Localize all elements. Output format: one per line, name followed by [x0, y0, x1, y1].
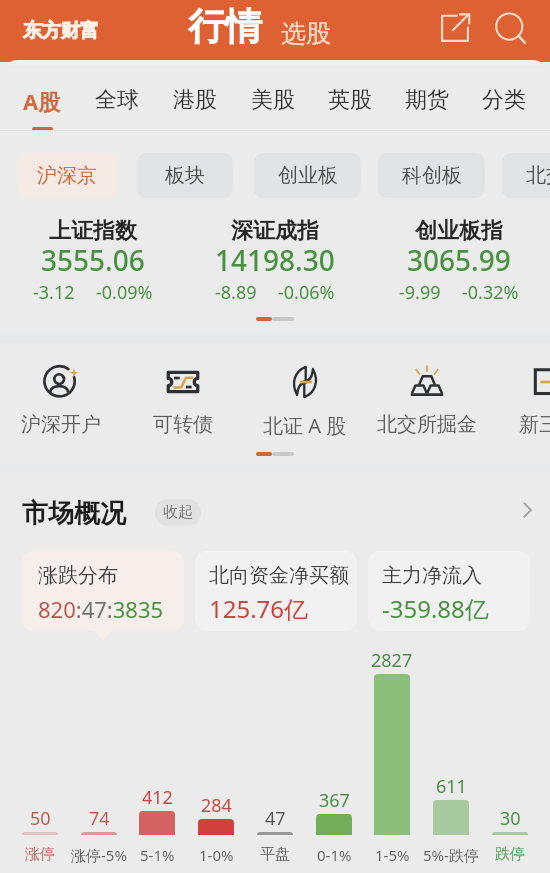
button[interactable]: 跌停	[476, 845, 544, 871]
button[interactable]: 1-5%	[358, 845, 426, 871]
staticText: 5%-跌停	[423, 845, 479, 865]
button[interactable]	[180, 210, 370, 305]
staticText: 367	[319, 788, 350, 813]
button[interactable]: 美股	[245, 86, 301, 131]
staticText: 5-1%	[140, 845, 175, 865]
staticText: 14198.30	[215, 241, 335, 279]
staticText: -0.32%	[462, 280, 519, 305]
staticText: 平盘	[260, 845, 290, 864]
button[interactable]: 北交所	[502, 153, 550, 198]
staticText: 412	[142, 785, 173, 810]
button[interactable]: 5-1%	[123, 845, 191, 871]
staticText: 创业板指	[415, 217, 503, 245]
button[interactable]: 港股	[167, 86, 223, 131]
button[interactable]	[1, 358, 121, 438]
button[interactable]: 沪深京	[17, 153, 117, 198]
button[interactable]: 分类	[476, 86, 532, 131]
staticText: 收起	[163, 503, 193, 522]
staticText: 全球	[95, 86, 139, 114]
button[interactable]: A股	[14, 86, 70, 131]
button[interactable]: 创业板	[254, 153, 361, 198]
button[interactable]: 全球	[89, 86, 145, 131]
staticText: 主力净流入	[382, 563, 482, 588]
staticText: 创业板	[278, 163, 338, 188]
staticText: 涨停-5%	[71, 845, 127, 865]
button[interactable]	[364, 210, 550, 305]
button[interactable]: 涨停-5%	[65, 845, 133, 871]
staticText: 选股	[281, 18, 331, 49]
button[interactable]: 平盘	[241, 845, 309, 871]
button[interactable]: 1-0%	[182, 845, 250, 871]
staticText: 科创板	[402, 163, 462, 188]
button[interactable]: 主力净流入	[368, 551, 530, 631]
staticText: 市场概况	[22, 497, 126, 530]
button[interactable]: 板块	[137, 153, 233, 198]
button[interactable]	[367, 358, 487, 438]
staticText: 3555.06	[41, 241, 145, 279]
staticText: -9.99	[399, 280, 441, 305]
staticText: 611	[436, 774, 467, 799]
staticText: 47	[265, 806, 286, 831]
button[interactable]: 涨跌分布	[22, 551, 184, 631]
staticText: 北证 A 股	[263, 412, 347, 439]
staticText: 英股	[328, 86, 372, 114]
button[interactable]	[0, 210, 188, 305]
staticText: 0-1%	[317, 845, 352, 865]
staticText: 期货	[405, 86, 449, 114]
staticText: A股	[23, 86, 61, 116]
staticText: 74	[89, 806, 110, 831]
button[interactable]	[123, 358, 243, 438]
staticText: 港股	[173, 86, 217, 114]
staticText: 820:47:3835	[38, 594, 164, 624]
button[interactable]	[245, 358, 365, 438]
staticText: 1-0%	[199, 845, 234, 865]
staticText: 125.76亿	[209, 592, 309, 625]
staticText: 30	[500, 806, 521, 831]
staticText: 沪深京	[37, 163, 97, 188]
staticText: 50	[30, 806, 51, 831]
staticText: 北交所掘金	[377, 412, 477, 437]
staticText: 北交所	[526, 163, 550, 188]
staticText: 板块	[165, 163, 205, 188]
staticText: 284	[201, 793, 232, 818]
staticText: -3.12	[33, 280, 75, 305]
button[interactable]: 涨停	[6, 845, 74, 871]
staticText: 2827	[371, 648, 413, 673]
staticText: 北向资金净买额	[209, 563, 349, 588]
staticText: 上证指数	[49, 217, 137, 245]
staticText: 新三板	[519, 412, 550, 437]
staticText: 3065.99	[407, 241, 511, 279]
staticText: -0.06%	[278, 280, 335, 305]
staticText: 1-5%	[375, 845, 410, 865]
button[interactable]: 0-1%	[300, 845, 368, 871]
staticText: 分类	[482, 86, 526, 114]
staticText: 深证成指	[231, 217, 319, 245]
button[interactable]	[489, 358, 550, 438]
staticText: 美股	[251, 86, 295, 114]
staticText: 行情	[188, 3, 262, 50]
button[interactable]: 期货	[399, 86, 455, 131]
button[interactable]: 科创板	[378, 153, 485, 198]
button[interactable]: 选股	[281, 18, 331, 49]
button[interactable]: 收起	[155, 499, 201, 526]
staticText: 可转债	[153, 412, 213, 437]
staticText: -8.89	[215, 280, 257, 305]
button[interactable]: 北向资金净买额	[195, 551, 357, 631]
button[interactable]: Search	[493, 11, 531, 49]
staticText: 东方财富	[23, 19, 99, 43]
staticText: -0.09%	[96, 280, 153, 305]
staticText: 涨跌分布	[38, 563, 118, 588]
button[interactable]: Share	[436, 9, 474, 47]
button[interactable]: 英股	[322, 86, 378, 131]
staticText: 跌停	[495, 845, 525, 864]
button[interactable]: More	[512, 495, 542, 525]
staticText: -359.88亿	[382, 592, 489, 625]
button[interactable]: 5%-跌停	[417, 845, 485, 871]
staticText: 涨停	[25, 845, 55, 864]
staticText: 沪深开户	[21, 412, 101, 437]
